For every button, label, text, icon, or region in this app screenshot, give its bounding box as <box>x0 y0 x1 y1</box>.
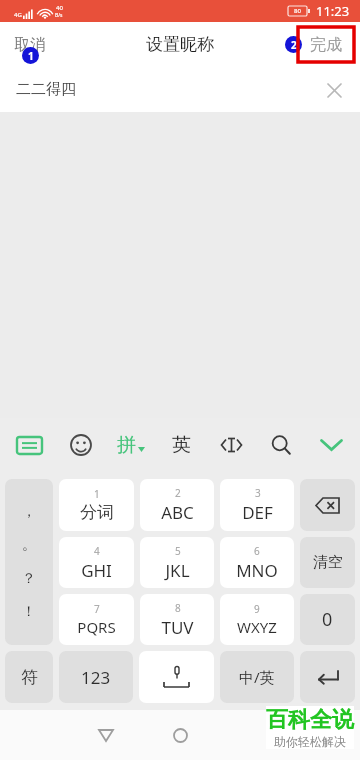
staticText: 2 <box>291 38 297 52</box>
staticText: ABC <box>161 501 194 524</box>
staticText: 0 <box>322 607 333 632</box>
button[interactable]: Keyboard layout <box>4 418 55 472</box>
staticText: 百科全说 <box>266 706 354 734</box>
staticText: WXYZ <box>237 617 277 637</box>
staticText: 。 <box>22 536 36 554</box>
button[interactable]: 5 <box>140 537 214 588</box>
button[interactable]: Move cursor <box>206 418 256 472</box>
button[interactable]: 清空 <box>300 537 355 588</box>
button[interactable]: 1 <box>59 479 134 531</box>
button[interactable]: 2 <box>140 479 214 531</box>
staticText: 4 <box>94 544 100 558</box>
button[interactable]: Search <box>256 418 306 472</box>
button[interactable]: Back <box>84 713 128 757</box>
button[interactable]: 符 <box>5 651 53 703</box>
staticText: JKL <box>165 559 190 582</box>
button[interactable]: Pinyin mode <box>106 418 156 472</box>
staticText: ！ <box>22 603 36 621</box>
button[interactable]: 6 <box>220 537 294 588</box>
staticText: 清空 <box>313 553 343 572</box>
staticText: 设置昵称 <box>146 34 214 55</box>
staticText: 8 <box>175 601 181 615</box>
button[interactable]: 3 <box>220 479 294 531</box>
button[interactable]: Hide keyboard <box>306 418 356 472</box>
button[interactable]: Clear text <box>317 73 351 107</box>
staticText: 分词 <box>80 502 114 523</box>
button[interactable]: Backspace <box>300 479 355 531</box>
button[interactable]: 0 <box>300 594 355 645</box>
button[interactable]: Space <box>139 651 214 703</box>
staticText: 英 <box>172 433 191 457</box>
staticText: 123 <box>81 666 111 689</box>
staticText: TUV <box>161 616 194 639</box>
staticText: DEF <box>242 501 273 524</box>
staticText: 1 <box>94 487 100 501</box>
staticText: MNO <box>236 559 278 582</box>
staticText: ？ <box>22 570 36 588</box>
staticText: 取消 <box>14 35 46 55</box>
button[interactable]: Home <box>158 713 202 757</box>
button[interactable]: 123 <box>59 651 133 703</box>
staticText: 5 <box>175 544 181 558</box>
staticText: 1 <box>28 49 34 63</box>
button[interactable]: 9 <box>220 594 294 645</box>
button[interactable]: 7 <box>59 594 134 645</box>
staticText: 6 <box>254 544 260 558</box>
staticText: 9 <box>254 602 260 616</box>
staticText: 80 <box>294 7 301 15</box>
staticText: 完成 <box>310 35 342 55</box>
staticText: 二二得四 <box>16 80 76 99</box>
staticText: 符 <box>21 667 38 688</box>
staticText: 2 <box>175 486 181 500</box>
staticText: 4G <box>14 11 22 19</box>
button[interactable]: 取消 <box>0 22 60 67</box>
button[interactable]: Emoji <box>55 418 106 472</box>
staticText: 助你轻松解决 <box>274 734 346 749</box>
staticText: GHI <box>81 559 112 582</box>
staticText: 3 <box>255 486 261 500</box>
button[interactable]: Punctuation <box>5 479 53 645</box>
staticText: PQRS <box>77 617 116 637</box>
staticText: B/s <box>55 12 63 19</box>
button[interactable]: 8 <box>140 594 214 645</box>
button[interactable]: 4 <box>59 537 134 588</box>
staticText: ， <box>22 503 36 521</box>
staticText: 40 <box>56 4 63 12</box>
button[interactable]: English mode <box>156 418 206 472</box>
staticText: 中/英 <box>239 667 275 687</box>
button[interactable]: Enter <box>300 651 355 703</box>
button[interactable]: 中/英 <box>220 651 294 703</box>
staticText: 11:23 <box>316 2 350 20</box>
button[interactable]: 完成 <box>298 27 354 62</box>
staticText: 拼 <box>117 433 136 457</box>
staticText: 7 <box>94 602 100 616</box>
